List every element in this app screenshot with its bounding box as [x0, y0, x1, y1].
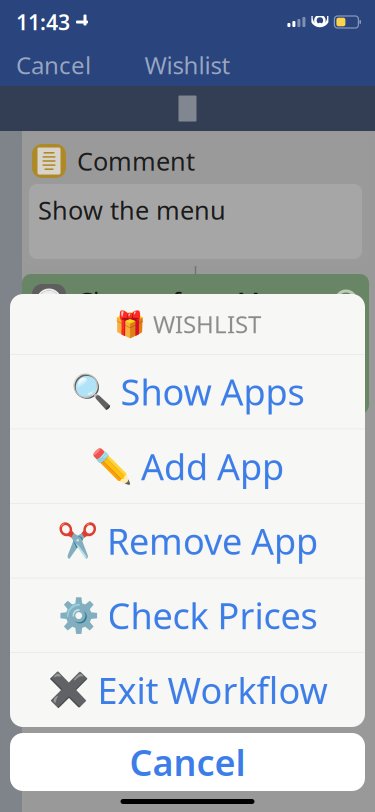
- staticText: Show the menu: [38, 193, 226, 227]
- button[interactable]: Cancel: [10, 733, 365, 791]
- staticText: Check Prices: [107, 591, 317, 639]
- staticText: Exit Workflow: [97, 666, 327, 714]
- staticText: Show Apps: [120, 368, 304, 415]
- staticText: Comment: [77, 144, 195, 178]
- staticText: Remove App: [107, 517, 318, 565]
- staticText: ✂️: [57, 522, 99, 560]
- button[interactable]: ✖️: [10, 653, 365, 727]
- staticText: Cancel: [16, 49, 91, 81]
- staticText: ⚙️: [57, 596, 99, 634]
- staticText: Add App: [141, 442, 284, 490]
- staticText: Prompt: [38, 333, 130, 367]
- staticText: wishlistname: [251, 320, 338, 380]
- staticText: ✖️: [47, 671, 89, 709]
- staticText: Wishlist: [144, 49, 230, 81]
- button[interactable]: ✏️: [10, 429, 365, 503]
- staticText: 🎁: [114, 309, 146, 338]
- staticText: Choose from Menu: [77, 284, 306, 318]
- button[interactable]: Cancel: [5, 41, 102, 89]
- button[interactable]: ✂️: [10, 504, 365, 578]
- staticText: WISHLIST: [153, 308, 261, 340]
- staticText: Cancel: [129, 738, 245, 786]
- staticText: ✏️: [91, 447, 133, 485]
- button[interactable]: 🔍: [10, 355, 365, 429]
- staticText: 🔍: [70, 373, 112, 411]
- staticText: settings: [146, 320, 227, 380]
- button[interactable]: ⚙️: [10, 578, 365, 652]
- staticText: 11:43: [16, 8, 70, 36]
